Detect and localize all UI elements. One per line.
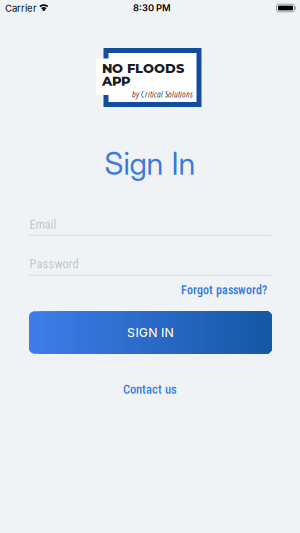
staticText: Carrier — [5, 2, 37, 14]
staticText: Sign In — [104, 145, 195, 182]
button[interactable]: Contact us — [123, 382, 177, 397]
staticText: Forgot password? — [181, 283, 267, 297]
button[interactable]: Forgot password? — [181, 283, 267, 297]
staticText: 8:30 PM — [133, 2, 171, 13]
staticText: Password — [29, 256, 78, 271]
staticText: SIGN IN — [127, 325, 173, 340]
staticText: APP — [102, 73, 131, 89]
staticText: Email — [29, 217, 56, 232]
button[interactable]: SIGN IN — [29, 311, 271, 353]
staticText: by Critical Solutions — [132, 89, 193, 100]
staticText: NO FLOODS — [102, 60, 184, 76]
staticText: Contact us — [123, 382, 177, 397]
